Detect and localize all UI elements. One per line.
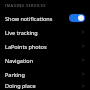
- staticText: Parking: [5, 71, 80, 78]
- button[interactable]: Live tracking: [0, 25, 90, 39]
- other: Open Parking: [80, 71, 86, 77]
- button[interactable]: Show notifications: [0, 11, 90, 25]
- staticText: Show notifications: [5, 15, 69, 22]
- other: Open Navigation: [80, 57, 86, 63]
- button[interactable]: Doing place: [0, 81, 90, 90]
- staticText: LaPoints photos: [5, 43, 80, 50]
- staticText: Live tracking: [5, 29, 80, 36]
- staticText: Doing place: [5, 82, 80, 89]
- other: Open LaPoints photos: [80, 43, 86, 49]
- button[interactable]: Navigation: [0, 53, 90, 67]
- staticText: Navigation: [5, 57, 80, 64]
- other: Open Doing place: [80, 83, 86, 89]
- other: Open Live tracking: [80, 29, 86, 35]
- staticText: IMAGING SERVICES: [5, 3, 46, 8]
- button[interactable]: LaPoints photos: [0, 39, 90, 53]
- button[interactable]: Parking: [0, 67, 90, 81]
